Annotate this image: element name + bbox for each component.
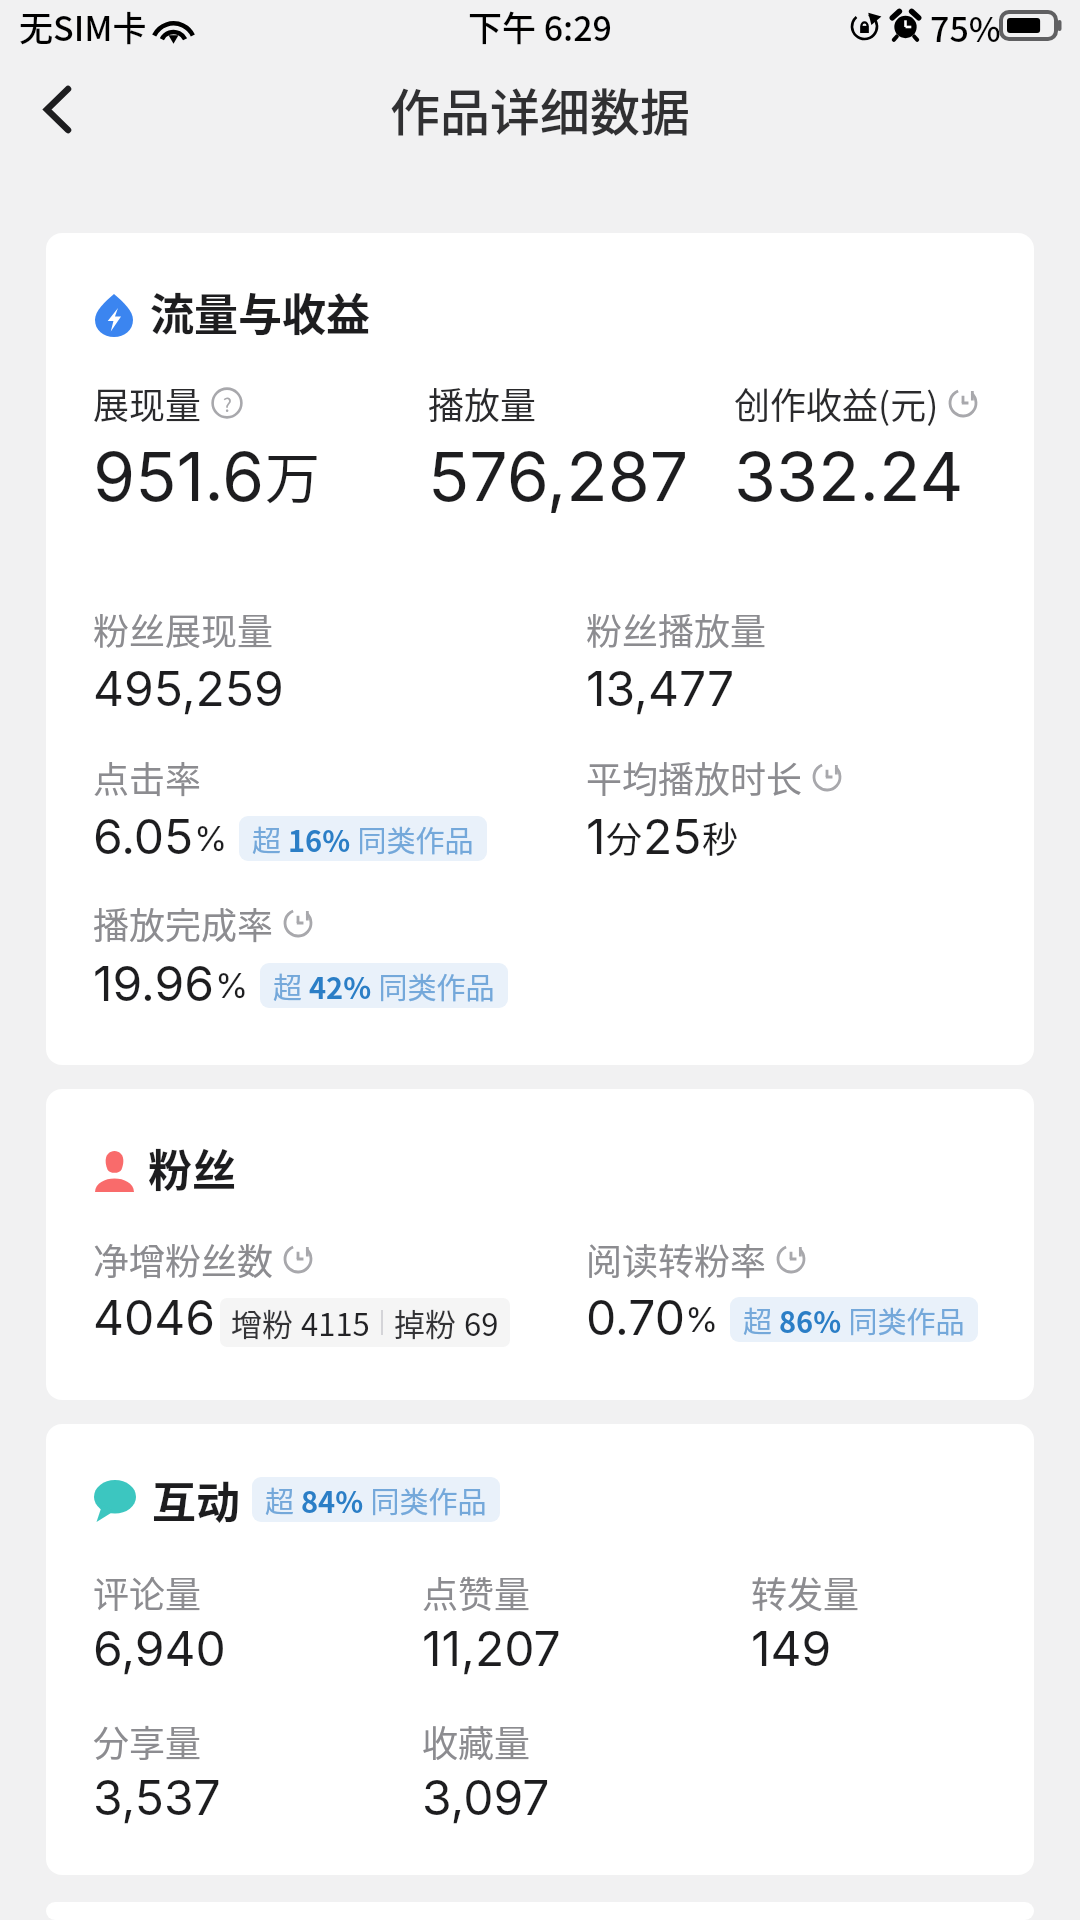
staticText: 万 [265, 434, 321, 514]
staticText: 16% [288, 818, 351, 860]
staticText: 净增粉丝数 [93, 1233, 274, 1285]
staticText: 3,097 [422, 1768, 550, 1826]
staticText: 25 [643, 807, 702, 865]
staticText: 收藏量 [422, 1715, 531, 1767]
staticText: 分 [606, 811, 643, 863]
staticText: 评论量 [93, 1566, 202, 1618]
staticText: % [215, 965, 249, 1006]
staticText: 粉丝播放量 [586, 603, 767, 655]
staticText: 超 [265, 1479, 301, 1521]
staticText: 6,940 [93, 1619, 226, 1677]
staticText: 13,477 [586, 659, 735, 717]
staticText: 流量与收益 [150, 280, 370, 344]
staticText: 同类作品 [351, 818, 474, 860]
staticText: 1 [586, 807, 606, 865]
staticText: 951.6 [93, 435, 265, 517]
staticText: 495,259 [93, 659, 284, 717]
staticText: 同类作品 [364, 1479, 487, 1521]
staticText: 4115 [301, 1300, 370, 1345]
staticText: 同类作品 [842, 1299, 965, 1341]
staticText: 阅读转粉率 [586, 1233, 767, 1285]
staticText: 超 [252, 818, 288, 860]
staticText: 秒 [702, 811, 739, 863]
staticText: 69 [464, 1300, 499, 1345]
staticText: 332.24 [734, 435, 964, 517]
staticText: 3,537 [93, 1768, 221, 1826]
staticText: 展现量 [93, 377, 202, 429]
staticText: 播放完成率 [93, 897, 274, 949]
staticText: 同类作品 [372, 965, 495, 1007]
staticText: 作品详细数据 [390, 73, 690, 145]
staticText: % [685, 1299, 719, 1340]
staticText: 11,207 [422, 1619, 561, 1677]
staticText: 19.96 [93, 954, 215, 1012]
staticText: 点赞量 [422, 1566, 531, 1618]
staticText: 超 [743, 1299, 779, 1341]
staticText: 增粉 [231, 1300, 293, 1345]
staticText: 0.70 [586, 1288, 685, 1346]
staticText: 4046 [93, 1288, 216, 1346]
staticText: 粉丝 [148, 1136, 236, 1200]
staticText: 84% [301, 1479, 364, 1521]
staticText: 75% [930, 3, 1001, 52]
staticText: 掉粉 [394, 1300, 456, 1345]
staticText: 149 [751, 1619, 832, 1677]
staticText: ? [223, 390, 232, 417]
staticText: 分享量 [93, 1715, 202, 1767]
staticText: 下午 6:29 [468, 2, 612, 51]
button[interactable]: Back [14, 66, 100, 152]
staticText: 粉丝展现量 [93, 603, 274, 655]
staticText: 6.05 [93, 807, 194, 865]
staticText: 86% [779, 1299, 842, 1341]
staticText: 互动 [152, 1468, 240, 1532]
staticText: 42% [309, 965, 372, 1007]
staticText: 576,287 [428, 435, 689, 517]
staticText: 超 [273, 965, 309, 1007]
staticText: 点击率 [93, 751, 202, 803]
staticText: 转发量 [751, 1566, 860, 1618]
staticText: % [194, 818, 228, 859]
staticText: 平均播放时长 [586, 751, 803, 803]
staticText: 创作收益(元) [734, 377, 939, 429]
staticText: 播放量 [428, 377, 537, 429]
staticText: 无SIM卡 [19, 2, 147, 51]
